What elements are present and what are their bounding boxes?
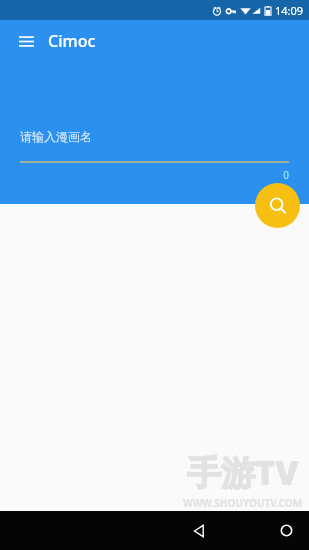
staticText: 0 bbox=[258, 168, 289, 182]
button[interactable]: Recent apps bbox=[221, 511, 309, 550]
staticText: WWW.SHOUYOUTV.COM bbox=[183, 496, 303, 510]
staticText: 请输入漫画名 bbox=[20, 129, 92, 144]
staticText: Cimoc bbox=[48, 30, 96, 52]
button[interactable]: Search bbox=[255, 183, 300, 228]
staticText: 手游TV bbox=[187, 449, 299, 495]
button[interactable]: Back bbox=[44, 511, 309, 550]
button[interactable]: Open navigation menu bbox=[10, 25, 42, 57]
button[interactable]: Home bbox=[132, 511, 309, 550]
staticText: 14:09 bbox=[275, 3, 304, 18]
